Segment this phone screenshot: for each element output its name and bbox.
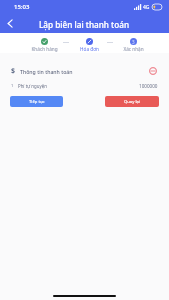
staticText: Hóa đơn — [80, 46, 99, 52]
staticText: 15:03 — [14, 3, 30, 11]
staticText: 3 — [132, 39, 135, 45]
staticText: Thông tin thanh toán — [20, 68, 73, 75]
staticText: 1 — [11, 83, 14, 89]
button[interactable]: Remove item — [148, 66, 158, 76]
staticText: Khách hàng — [31, 46, 58, 52]
staticText: Lập biên lai thanh toán — [39, 19, 130, 30]
staticText: 1000000 — [139, 83, 158, 89]
button[interactable]: Tiếp tục — [10, 96, 63, 107]
staticText: Phí tự nguyện — [18, 83, 47, 89]
staticText: Xác nhận — [123, 46, 144, 52]
staticText: $ — [11, 66, 16, 76]
button[interactable]: Back — [2, 14, 17, 33]
button[interactable]: Quay lại — [105, 96, 159, 107]
staticText: Tiếp tục — [29, 99, 45, 105]
staticText: Quay lại — [124, 99, 140, 105]
button[interactable]: 3 — [111, 33, 155, 52]
button[interactable]: Hóa đơn — [67, 33, 111, 52]
button[interactable]: Khách hàng — [22, 33, 67, 52]
staticText: 4G — [143, 4, 150, 11]
